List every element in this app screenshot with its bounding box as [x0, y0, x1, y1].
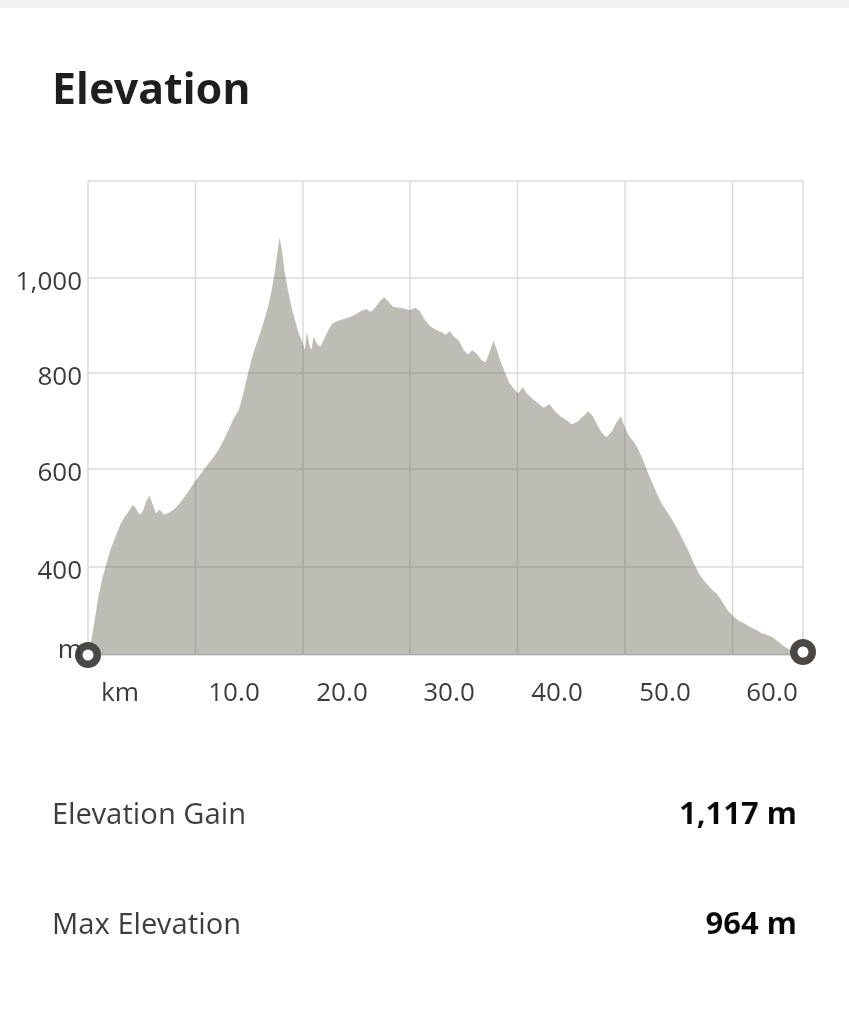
- staticText: 1,000: [0, 262, 82, 1023]
- staticText: 800: [0, 357, 82, 1023]
- staticText: 600: [0, 453, 82, 1023]
- staticText: m: [0, 630, 82, 1023]
- staticText: 1,117 m: [497, 791, 797, 867]
- staticText: 20.0: [282, 673, 402, 1023]
- staticText: km: [60, 673, 180, 1023]
- staticText: 60.0: [712, 673, 832, 1023]
- button[interactable]: Max Elevation: [0, 885, 849, 961]
- staticText: Max Elevation: [52, 903, 242, 942]
- staticText: 50.0: [605, 673, 725, 1023]
- staticText: 964 m: [497, 901, 797, 977]
- staticText: Elevation: [52, 58, 251, 117]
- staticText: 400: [0, 551, 82, 1023]
- button[interactable]: Elevation profile chart: [40, 170, 810, 695]
- staticText: 40.0: [497, 673, 617, 1023]
- staticText: 10.0: [174, 673, 294, 1023]
- staticText: 30.0: [389, 673, 509, 1023]
- button[interactable]: Elevation Gain: [0, 775, 849, 851]
- staticText: Elevation Gain: [52, 793, 247, 832]
